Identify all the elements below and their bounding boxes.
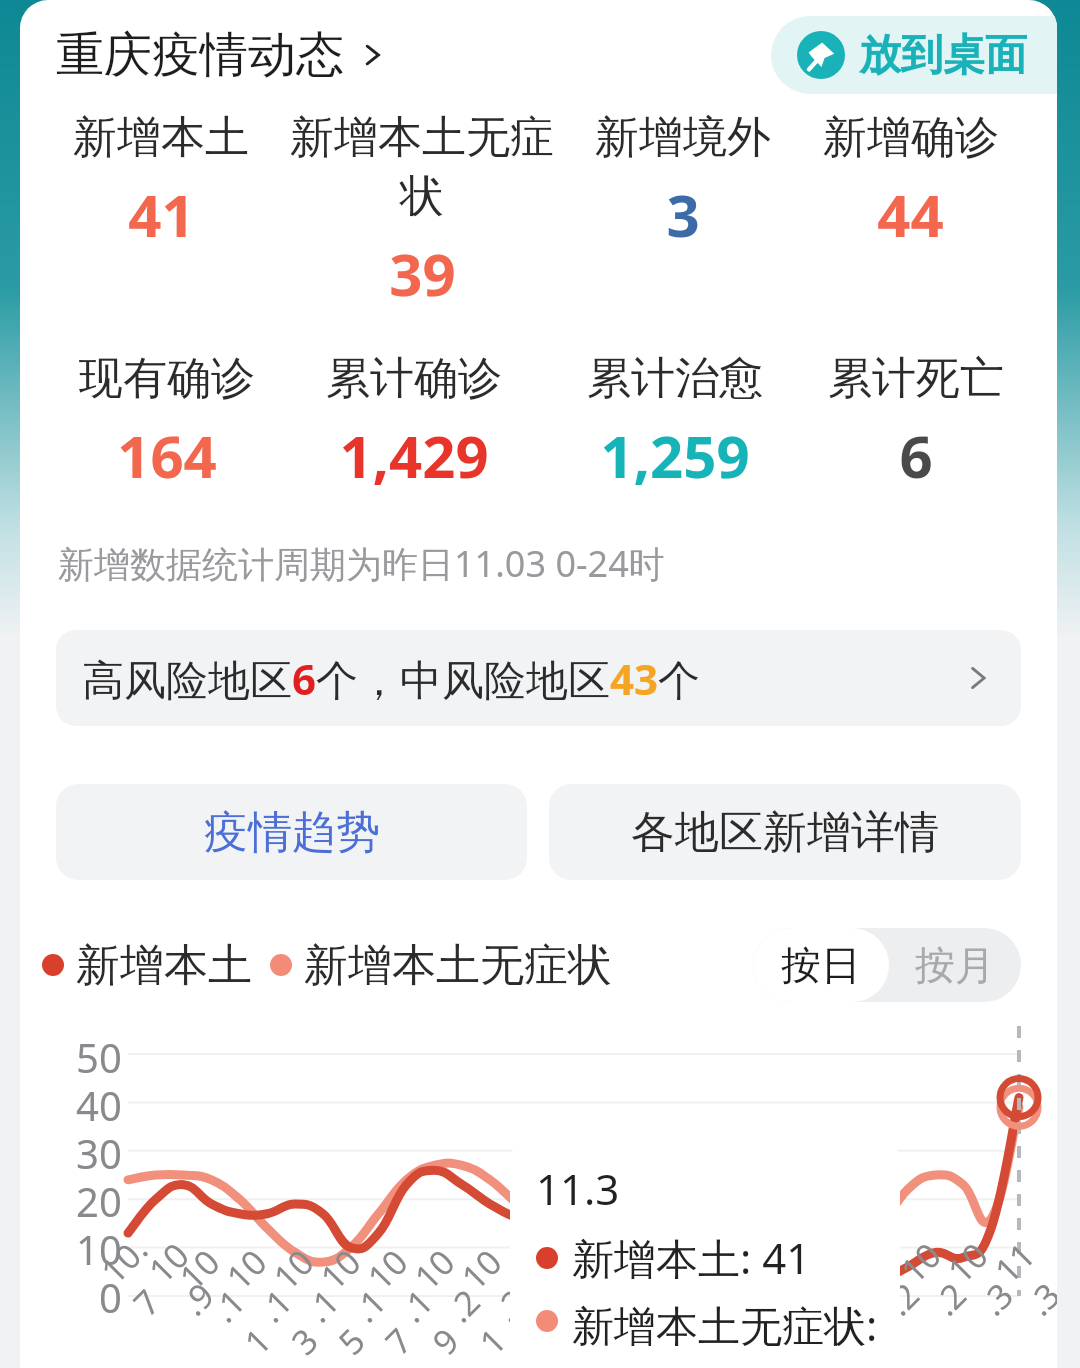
staticText: 累计死亡	[828, 351, 1004, 406]
staticText: 30	[76, 1126, 122, 1174]
staticText: 10.23	[451, 1234, 582, 1364]
staticText: 6	[899, 416, 933, 495]
button[interactable]: 重庆疫情动态	[56, 25, 390, 85]
staticText: 11.3	[536, 1160, 620, 1217]
staticText: 10.17	[310, 1234, 441, 1364]
button[interactable]: 疫情趋势	[56, 784, 527, 880]
staticText: 累计确诊	[326, 351, 502, 406]
staticText: 10.3	[937, 1227, 1036, 1325]
staticText: 10.29	[592, 1234, 723, 1364]
staticText: 164	[117, 416, 217, 495]
button[interactable]: 按日	[753, 928, 889, 1002]
staticText: 各地区新增详情	[631, 805, 939, 860]
staticText: 10.27	[545, 1234, 676, 1364]
staticText: 新增数据统计周期为昨日11.03 0-24时	[58, 539, 665, 588]
staticText: 疫情趋势	[204, 805, 380, 860]
button[interactable]: 各地区新增详情	[549, 784, 1021, 880]
staticText: 新增确诊	[823, 110, 999, 165]
staticText: 50	[76, 1030, 122, 1078]
staticText: 按月	[915, 940, 995, 990]
staticText: 10	[76, 1222, 122, 1270]
staticText: 新增境外	[595, 110, 771, 165]
staticText: 10.13	[216, 1234, 347, 1364]
staticText: 40	[76, 1078, 122, 1126]
staticText: 10.15	[263, 1234, 394, 1364]
staticText: 0	[99, 1270, 122, 1318]
staticText: 高风险地区6个，中风险地区43个	[82, 650, 701, 707]
staticText: 10.31	[639, 1234, 770, 1364]
button[interactable]: 高风险地区6个，中风险地区43个	[56, 630, 1021, 726]
staticText: 11.3	[984, 1227, 1057, 1325]
staticText: 10.7	[90, 1226, 189, 1325]
staticText: 1,429	[339, 416, 489, 495]
staticText: 10.2	[749, 1227, 848, 1325]
staticText: 累计治愈	[587, 351, 763, 406]
staticText: 放到桌面	[859, 29, 1027, 82]
staticText: 39	[389, 234, 456, 313]
staticText: 新增本土无症状	[272, 110, 572, 224]
staticText: 10.19	[357, 1234, 488, 1364]
staticText: 41	[128, 175, 195, 254]
button[interactable]: 按月	[889, 928, 1021, 1002]
staticText: 新增本土无症状	[304, 938, 612, 993]
staticText: 3	[666, 175, 700, 254]
staticText: 按日	[781, 940, 861, 990]
staticText: 10.9	[138, 1227, 237, 1325]
staticText: 10.2	[796, 1227, 895, 1325]
staticText: 10.11	[169, 1234, 300, 1364]
staticText: 1,259	[600, 416, 750, 495]
staticText: 10.25	[498, 1234, 629, 1364]
staticText: 新增本土	[73, 110, 249, 165]
button[interactable]: 放到桌面	[771, 16, 1057, 94]
staticText: 新增本土	[76, 938, 252, 993]
staticText: 20	[76, 1174, 122, 1222]
staticText: 10.2	[702, 1227, 801, 1325]
staticText: 10.2	[843, 1227, 942, 1325]
staticText: 新增本土: 41	[572, 1229, 811, 1286]
staticText: 10.2	[890, 1227, 989, 1325]
staticText: 10.21	[404, 1234, 535, 1364]
staticText: 现有确诊	[79, 351, 255, 406]
staticText: 新增本土无症状: 39	[572, 1296, 882, 1346]
staticText: 44	[877, 175, 944, 254]
staticText: 重庆疫情动态	[56, 25, 344, 85]
